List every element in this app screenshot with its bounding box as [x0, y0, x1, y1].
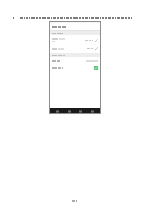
button[interactable]: Edit	[95, 39, 98, 42]
button[interactable]: Edit	[49, 44, 101, 53]
button[interactable]	[49, 57, 101, 64]
button[interactable]: Toggle setting	[94, 66, 98, 70]
button[interactable]: Edit	[49, 35, 101, 44]
button[interactable]: Edit	[95, 47, 98, 50]
button[interactable]: Back	[67, 108, 72, 114]
button[interactable]	[49, 23, 101, 30]
button[interactable]: Home	[78, 108, 83, 114]
button[interactable]: Menu	[90, 108, 95, 114]
button[interactable]: Toggle setting	[49, 64, 101, 72]
button[interactable]: Recents	[55, 108, 60, 114]
